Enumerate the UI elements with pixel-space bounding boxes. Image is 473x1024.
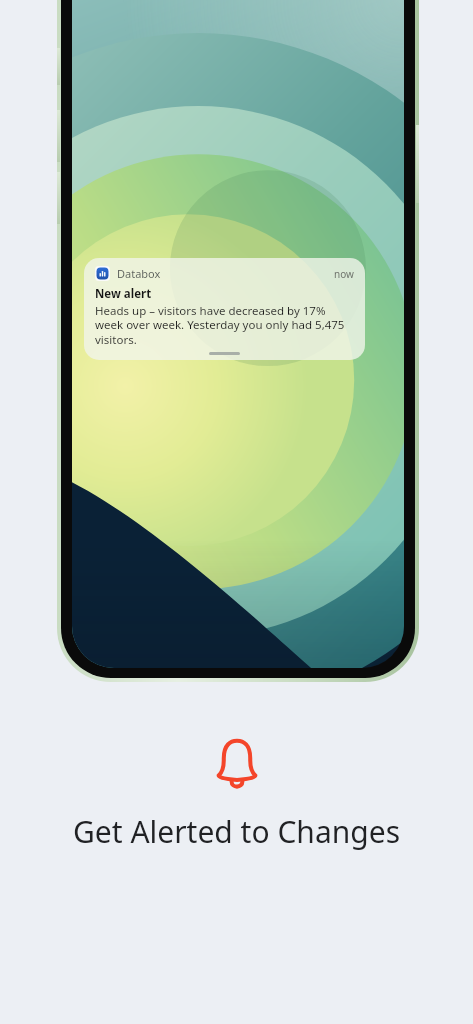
staticText: now [334, 267, 354, 281]
button[interactable]: Databox [84, 258, 365, 360]
staticText: Get Alerted to Changes [73, 811, 400, 852]
other: Alert notification bell [210, 735, 264, 793]
staticText: Heads up – visitors have decreased by 17… [95, 303, 354, 348]
staticText: New alert [95, 286, 152, 302]
staticText: Databox [117, 266, 161, 281]
